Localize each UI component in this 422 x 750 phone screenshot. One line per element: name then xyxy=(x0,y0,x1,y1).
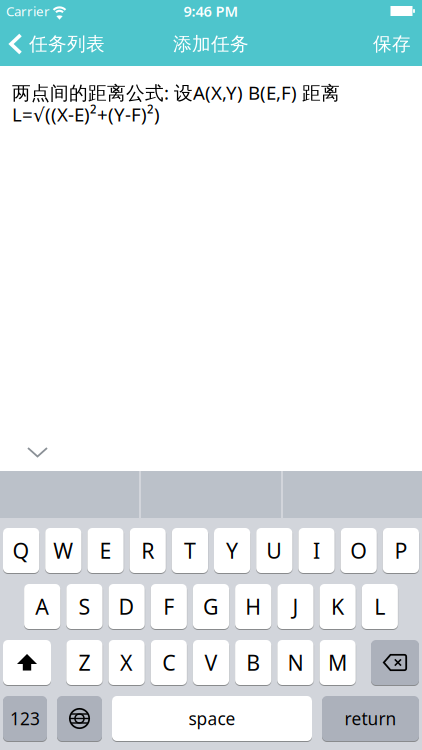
button[interactable]: V xyxy=(193,640,229,685)
button[interactable]: Y xyxy=(214,528,250,573)
button[interactable]: N xyxy=(277,640,313,685)
staticText: D xyxy=(119,592,135,621)
button[interactable]: Next keyboard xyxy=(57,696,102,741)
button[interactable]: A xyxy=(24,584,60,629)
button[interactable]: 保存 xyxy=(373,32,422,55)
staticText: I xyxy=(313,536,320,565)
staticText: 9:46 PM xyxy=(183,1,238,21)
staticText: C xyxy=(162,648,175,677)
staticText: W xyxy=(53,536,73,565)
staticText: 添加任务 xyxy=(173,32,249,55)
staticText: P xyxy=(394,536,407,565)
button[interactable]: P xyxy=(383,528,419,573)
button[interactable]: S xyxy=(66,584,102,629)
button[interactable]: C xyxy=(151,640,187,685)
button[interactable]: space xyxy=(112,696,312,741)
button[interactable]: G xyxy=(193,584,229,629)
staticText: R xyxy=(141,536,154,565)
staticText: S xyxy=(78,592,90,621)
button[interactable]: T xyxy=(172,528,208,573)
button[interactable]: M xyxy=(319,640,356,685)
staticText: Q xyxy=(13,536,30,565)
button[interactable]: 123 xyxy=(3,696,47,741)
button[interactable]: W xyxy=(45,528,81,573)
staticText: H xyxy=(245,592,261,621)
staticText: space xyxy=(188,707,235,730)
staticText: V xyxy=(204,648,217,677)
staticText: E xyxy=(99,536,111,565)
staticText: J xyxy=(292,592,298,621)
button[interactable]: Q xyxy=(3,528,39,573)
staticText: M xyxy=(328,648,347,677)
staticText: Y xyxy=(226,536,238,565)
button[interactable]: X xyxy=(108,640,145,685)
staticText: A xyxy=(35,592,49,621)
button[interactable]: L xyxy=(362,584,398,629)
staticText: 任务列表 xyxy=(29,32,105,55)
button[interactable]: K xyxy=(319,584,356,629)
button[interactable]: I xyxy=(298,528,335,573)
button[interactable]: J xyxy=(277,584,313,629)
button[interactable]: H xyxy=(235,584,271,629)
button[interactable]: 任务列表 xyxy=(0,32,105,55)
staticText: T xyxy=(184,536,196,565)
staticText: B xyxy=(246,648,260,677)
staticText: F xyxy=(163,592,174,621)
staticText: N xyxy=(287,648,303,677)
staticText: U xyxy=(266,536,282,565)
button[interactable]: O xyxy=(341,528,377,573)
staticText: L=√((X-E)²+(Y-F)²) xyxy=(12,102,160,127)
staticText: X xyxy=(120,648,133,677)
button[interactable]: U xyxy=(256,528,292,573)
staticText: G xyxy=(203,592,219,621)
button[interactable]: Dismiss keyboard xyxy=(0,447,48,458)
staticText: 两点间的距离公式: 设A(X,Y) B(E,F) 距离 xyxy=(12,80,340,105)
button[interactable]: F xyxy=(151,584,187,629)
button[interactable]: Shift xyxy=(3,640,51,685)
button[interactable]: return xyxy=(322,696,419,741)
button[interactable]: Z xyxy=(66,640,102,685)
button[interactable]: E xyxy=(87,528,124,573)
staticText: Carrier xyxy=(6,2,50,20)
staticText: L xyxy=(374,592,385,621)
staticText: Z xyxy=(78,648,90,677)
button[interactable]: Delete xyxy=(371,640,419,685)
button[interactable]: B xyxy=(235,640,271,685)
staticText: 123 xyxy=(10,707,40,730)
staticText: 保存 xyxy=(373,32,411,55)
staticText: O xyxy=(350,536,367,565)
button[interactable]: R xyxy=(130,528,166,573)
staticText: K xyxy=(331,592,344,621)
button[interactable]: D xyxy=(108,584,145,629)
staticText: return xyxy=(344,707,396,730)
